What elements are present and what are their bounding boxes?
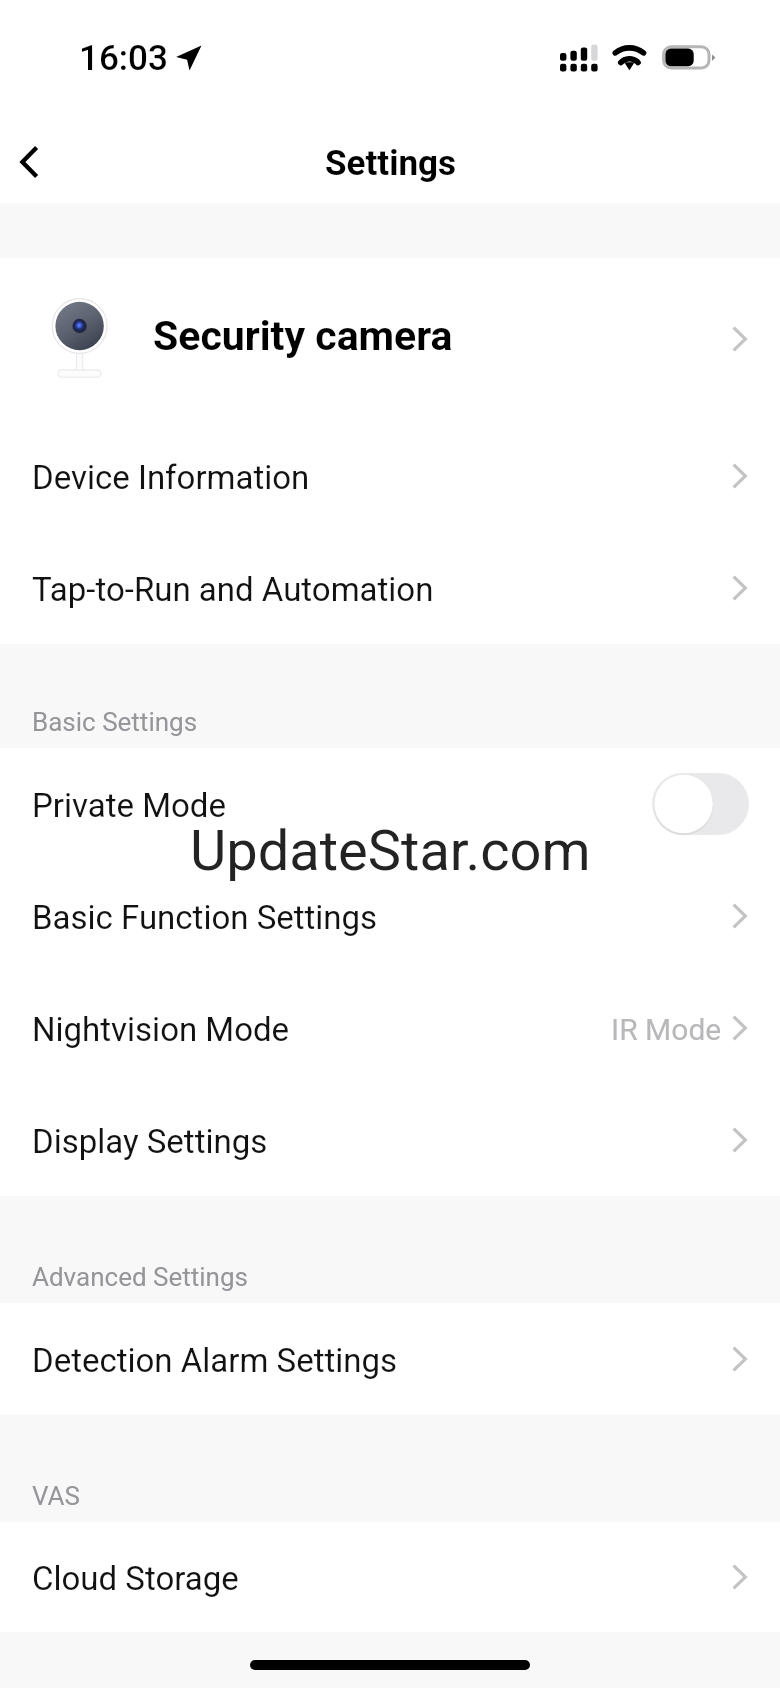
button[interactable]: Display Settings (0, 1084, 780, 1196)
staticText: Cloud Storage (32, 1559, 239, 1598)
staticText: Security camera (153, 312, 453, 360)
button[interactable]: Tap-to-Run and Automation (0, 532, 780, 644)
staticText: Private Mode (32, 786, 226, 825)
button[interactable]: Device Information (0, 420, 780, 532)
button[interactable]: Private Mode toggle (652, 773, 749, 835)
staticText: Device Information (32, 458, 310, 497)
staticText: Basic Function Settings (32, 898, 378, 937)
button[interactable]: Basic Function Settings (0, 860, 780, 972)
staticText: Nightvision Mode (32, 1010, 290, 1049)
staticText: Display Settings (32, 1122, 268, 1161)
button[interactable]: Nightvision Mode (0, 972, 780, 1084)
staticText: Detection Alarm Settings (32, 1341, 398, 1380)
staticText: UpdateStar.com (190, 818, 591, 884)
button[interactable]: Security camera (0, 258, 780, 420)
staticText: Tap-to-Run and Automation (32, 570, 434, 609)
staticText: Settings (325, 143, 456, 184)
button[interactable]: Cloud Storage (0, 1522, 780, 1632)
staticText: Advanced Settings (32, 1262, 248, 1292)
button[interactable]: Back (0, 120, 76, 203)
staticText: 16:03 (79, 38, 168, 79)
staticText: IR Mode (611, 1012, 722, 1047)
staticText: VAS (32, 1481, 81, 1511)
button[interactable]: Private Mode (0, 748, 780, 860)
staticText: Basic Settings (32, 707, 198, 737)
button[interactable]: Detection Alarm Settings (0, 1303, 780, 1415)
